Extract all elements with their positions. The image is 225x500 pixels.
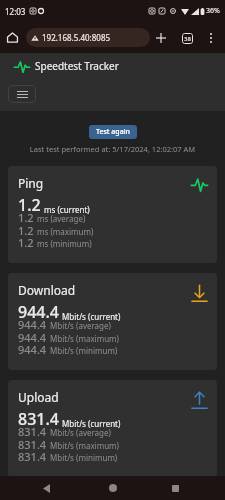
staticText: 1.2 bbox=[18, 210, 34, 225]
staticText: Mbit/s (current) bbox=[62, 418, 121, 429]
button[interactable]: More options bbox=[201, 28, 221, 48]
staticText: Ping bbox=[18, 175, 44, 191]
staticText: 1.2 bbox=[18, 223, 34, 238]
staticText: Upload bbox=[18, 389, 59, 405]
staticText: Mbit/s (minimum) bbox=[50, 345, 118, 356]
button[interactable]: 192.168.5.40:8085 bbox=[26, 28, 150, 47]
button[interactable]: Recent apps bbox=[163, 476, 187, 500]
staticText: 944.4 bbox=[18, 342, 47, 357]
button[interactable]: Download bbox=[8, 273, 217, 370]
button[interactable]: Upload bbox=[8, 380, 217, 477]
staticText: Test again bbox=[96, 127, 130, 137]
staticText: 192.168.5.40:8085 bbox=[42, 32, 111, 43]
staticText: 1.2 bbox=[18, 235, 34, 250]
staticText: Mbit/s (maximum) bbox=[50, 440, 119, 451]
staticText: Mbit/s (current) bbox=[62, 311, 121, 322]
button[interactable]: Ping bbox=[8, 166, 217, 263]
staticText: Mbit/s (average) bbox=[50, 320, 111, 331]
staticText: Mbit/s (maximum) bbox=[50, 333, 119, 344]
staticText: ms (average) bbox=[37, 213, 86, 224]
staticText: Mbit/s (minimum) bbox=[50, 452, 118, 463]
staticText: 831.4 bbox=[18, 437, 47, 452]
staticText: 1.2 bbox=[18, 194, 41, 216]
button[interactable]: Back bbox=[34, 476, 58, 500]
staticText: 944.4 bbox=[18, 317, 47, 332]
button[interactable]: Home bbox=[101, 476, 125, 500]
button[interactable]: Menu bbox=[8, 85, 36, 103]
staticText: 944.4 bbox=[18, 330, 47, 345]
staticText: Speedtest Tracker bbox=[35, 59, 119, 73]
staticText: 12:03 bbox=[5, 6, 26, 17]
staticText: 38 bbox=[184, 35, 191, 43]
staticText: 831.4 bbox=[18, 449, 47, 464]
button[interactable]: Test again bbox=[89, 125, 137, 139]
staticText: 831.4 bbox=[18, 424, 47, 439]
staticText: 831.4 bbox=[18, 408, 59, 430]
staticText: Download bbox=[18, 282, 76, 298]
staticText: ms (minimum) bbox=[37, 238, 92, 249]
button[interactable]: Tabs bbox=[177, 28, 197, 48]
staticText: 36% bbox=[206, 6, 220, 16]
button[interactable]: Home bbox=[3, 28, 21, 46]
staticText: 944.4 bbox=[18, 301, 59, 323]
staticText: ms (maximum) bbox=[37, 226, 94, 237]
staticText: ms (current) bbox=[44, 204, 90, 215]
staticText: Mbit/s (average) bbox=[50, 427, 111, 438]
staticText: Last test performed at: 5/17/2024, 12:02… bbox=[0, 144, 225, 154]
button[interactable]: New tab bbox=[151, 28, 171, 48]
